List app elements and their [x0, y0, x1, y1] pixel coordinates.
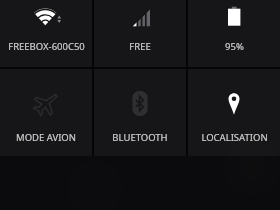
button[interactable]: Battery level: [188, 0, 280, 67]
staticText: FREE: [129, 40, 151, 53]
staticText: 95%: [225, 40, 244, 53]
button[interactable]: Airplane mode: [0, 69, 92, 156]
staticText: MODE AVION: [16, 131, 76, 144]
button[interactable]: Bluetooth: [94, 69, 186, 156]
button[interactable]: Wi-Fi network: [0, 0, 92, 67]
staticText: FREEBOX-600C50: [8, 40, 85, 53]
staticText: BLUETOOTH: [112, 131, 168, 144]
staticText: LOCALISATION: [201, 131, 268, 144]
button[interactable]: Mobile network: [94, 0, 186, 67]
button[interactable]: Location: [188, 69, 280, 156]
